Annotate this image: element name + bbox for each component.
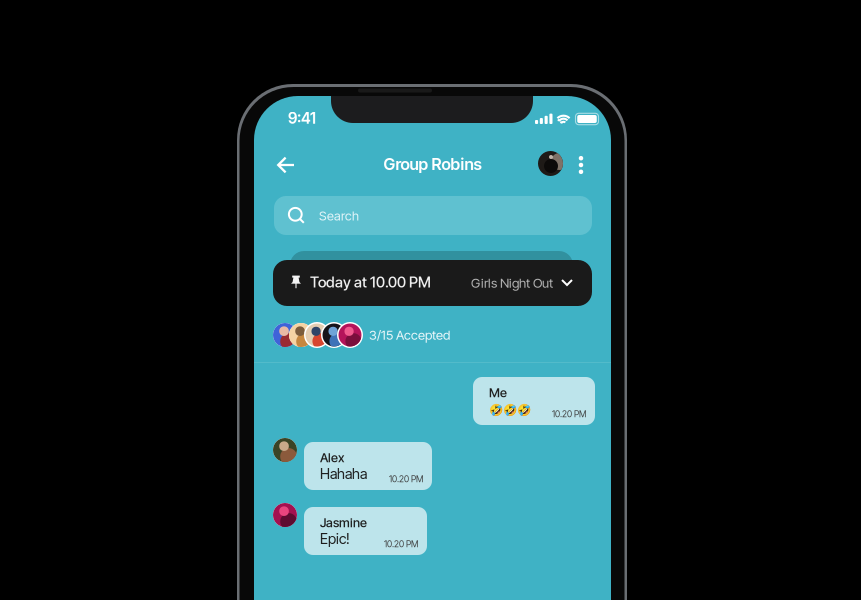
staticText: 🤣🤣🤣 — [489, 403, 531, 416]
staticText: 3/15 Accepted — [369, 327, 450, 343]
button[interactable]: More options — [570, 149, 592, 181]
button[interactable]: Alex — [304, 442, 432, 490]
button[interactable]: Jasmine — [304, 507, 427, 555]
staticText: Today at 10.00 PM — [310, 273, 431, 291]
staticText: 9:41 — [288, 109, 316, 128]
staticText: Group Robins — [383, 154, 481, 174]
staticText: Epic! — [320, 530, 350, 547]
staticText: 10.20 PM — [389, 474, 423, 484]
staticText: 10.20 PM — [384, 539, 418, 549]
button[interactable]: Group photo — [534, 147, 567, 180]
staticText: Alex — [320, 450, 344, 465]
button[interactable]: Me — [473, 377, 595, 425]
staticText: Jasmine — [320, 515, 367, 530]
staticText: Search — [319, 208, 359, 223]
staticText: Me — [489, 385, 507, 400]
button[interactable]: Search — [274, 196, 592, 235]
staticText: Girls Night Out — [471, 275, 553, 291]
staticText: 10.20 PM — [552, 409, 586, 419]
button[interactable]: Today at 10.00 PM — [273, 260, 592, 306]
button[interactable]: Back — [267, 146, 305, 184]
staticText: Hahaha — [320, 465, 367, 482]
